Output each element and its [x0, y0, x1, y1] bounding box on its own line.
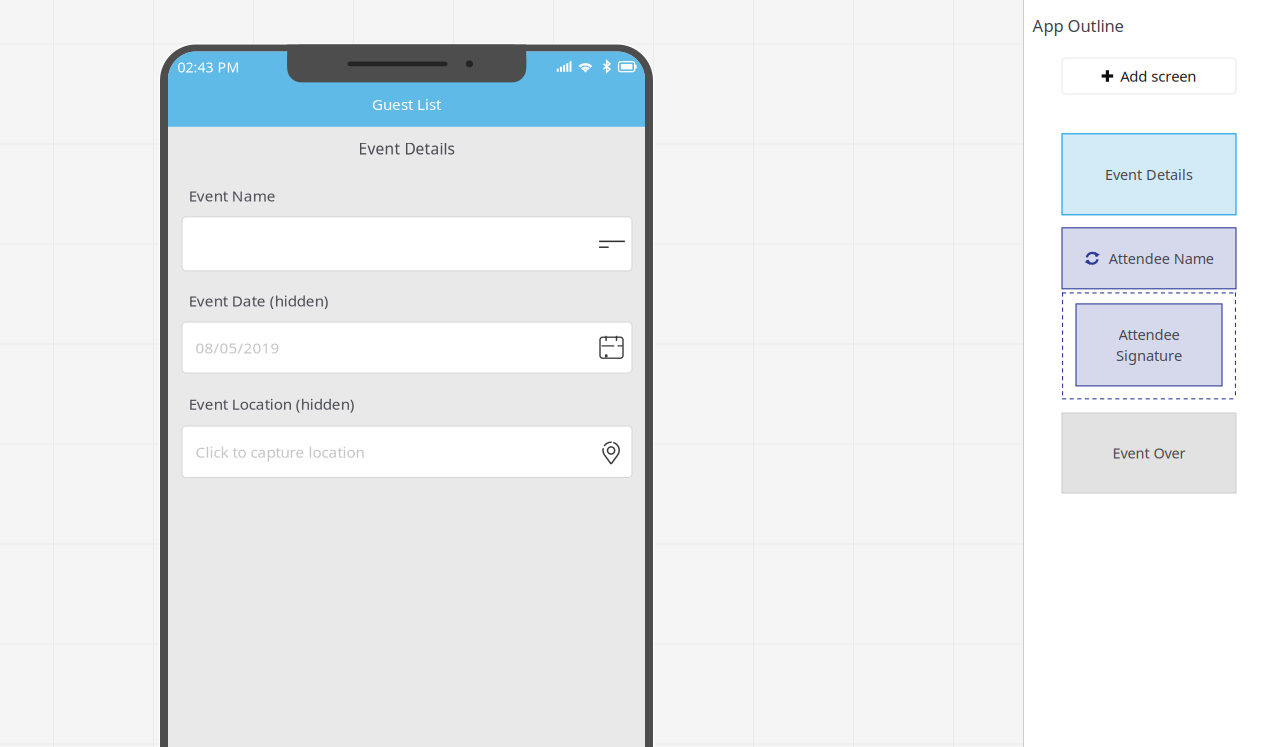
staticText: Event Details	[1105, 164, 1193, 184]
staticText: Event Location (hidden)	[189, 393, 355, 414]
staticText: Event Name	[189, 185, 276, 206]
staticText: Click to capture location	[195, 441, 364, 462]
staticText: Guest List	[372, 94, 441, 114]
staticText: Signature	[1116, 345, 1182, 365]
button[interactable]: Add screen	[1062, 58, 1236, 94]
button[interactable]: Event Over	[1062, 413, 1236, 493]
staticText: Attendee Name	[1109, 248, 1214, 268]
button[interactable]: Event Date	[182, 322, 632, 373]
staticText: 08/05/2019	[195, 337, 279, 358]
staticText: 02:43 PM	[177, 57, 239, 77]
staticText: Event Over	[1112, 443, 1185, 463]
staticText: Event Date (hidden)	[189, 290, 329, 311]
button[interactable]: Attendee	[1076, 304, 1222, 386]
button[interactable]: Event Details	[1062, 134, 1236, 215]
button[interactable]: Event Location	[182, 426, 632, 477]
button[interactable]: Event Name	[182, 217, 632, 271]
staticText: Attendee	[1118, 324, 1179, 344]
staticText: Event Details	[358, 138, 454, 159]
button[interactable]: Attendee Name	[1062, 228, 1236, 289]
staticText: Add screen	[1120, 66, 1196, 86]
staticText: App Outline	[1032, 14, 1123, 37]
